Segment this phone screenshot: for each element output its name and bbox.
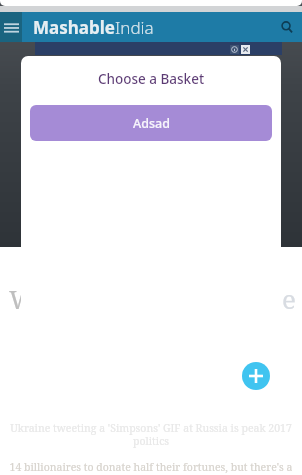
button[interactable]: Adsad: [30, 105, 272, 141]
button[interactable]: Close ad: [240, 44, 250, 54]
button[interactable]: Add basket: [242, 362, 270, 390]
staticText: Choose a Basket: [21, 70, 281, 88]
button[interactable]: Ad information: [229, 44, 239, 54]
staticText: Mashable: [33, 16, 115, 39]
staticText: India: [115, 16, 154, 39]
button[interactable]: Open navigation menu: [0, 12, 22, 42]
staticText: e: [282, 281, 296, 316]
staticText: Adsad: [133, 115, 170, 132]
staticText: Ukraine tweeting a 'Simpsons' GIF at Rus…: [6, 421, 296, 448]
staticText: 14 billionaires to donate half their for…: [4, 460, 298, 474]
button[interactable]: Search: [272, 12, 302, 42]
staticText: W: [9, 281, 37, 316]
